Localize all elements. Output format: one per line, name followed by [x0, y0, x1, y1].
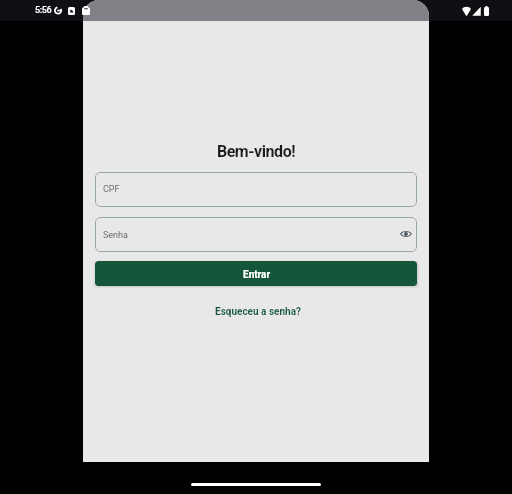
staticText: Entrar	[243, 269, 271, 281]
button[interactable]: Show password	[395, 223, 417, 245]
staticText: Bem-vindo!	[83, 142, 429, 161]
staticText: Senha	[103, 230, 128, 241]
staticText: Esqueceu a senha?	[215, 306, 302, 318]
button[interactable]: Senha	[95, 217, 417, 252]
staticText: CPF	[103, 184, 120, 195]
button[interactable]: Entrar	[95, 261, 417, 286]
staticText: 5:56	[35, 5, 52, 16]
button[interactable]: Esqueceu a senha?	[207, 303, 306, 321]
button[interactable]: CPF	[95, 172, 417, 207]
